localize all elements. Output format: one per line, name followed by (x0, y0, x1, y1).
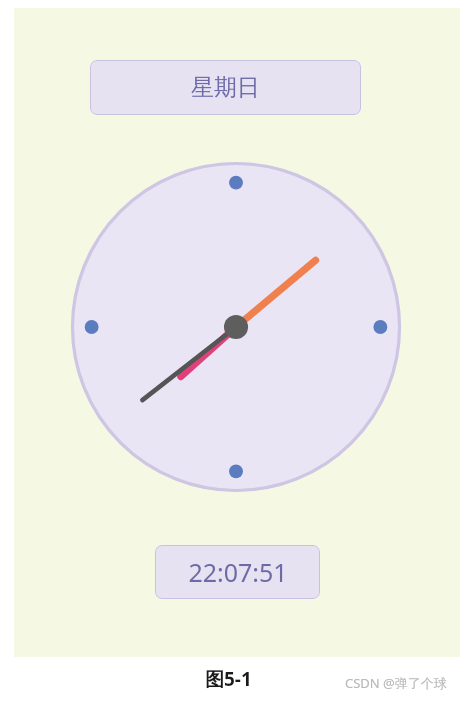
staticText: 星期日 (191, 73, 260, 102)
staticText: CSDN @弹了个球 (345, 674, 447, 692)
button[interactable]: 22:07:51 (155, 545, 320, 599)
staticText: 图5-1 (205, 666, 252, 692)
button[interactable]: 星期日 (90, 60, 361, 115)
button[interactable]: Analog clock (69, 160, 403, 494)
staticText: 22:07:51 (188, 555, 288, 589)
